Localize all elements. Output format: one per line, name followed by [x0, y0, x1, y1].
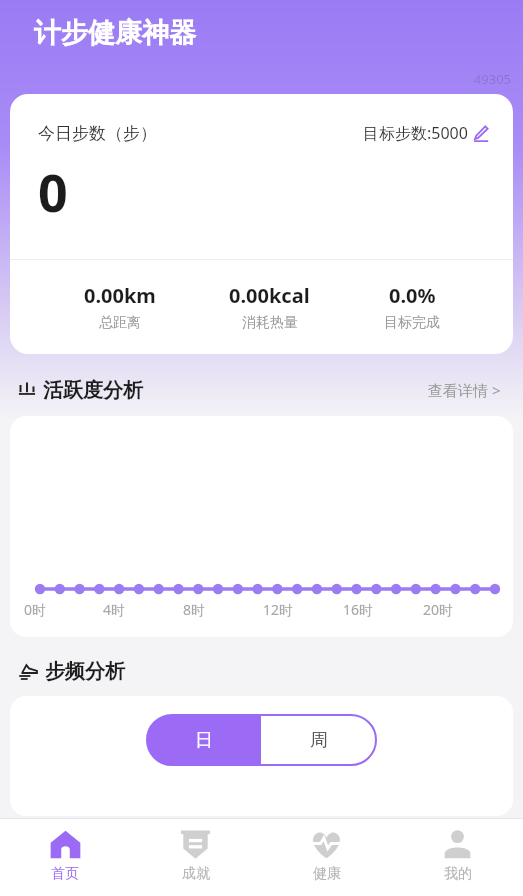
button[interactable]: 查看详情 >: [424, 376, 505, 404]
staticText: 活跃度分析: [43, 378, 143, 403]
staticText: 20时: [423, 600, 454, 619]
button[interactable]: 健康: [261, 819, 392, 896]
button[interactable]: 目标步数:5000: [361, 120, 491, 146]
staticText: 目标完成: [384, 314, 440, 332]
staticText: 0.00kcal: [229, 282, 310, 309]
staticText: 0.0%: [389, 282, 436, 309]
staticText: 日: [195, 729, 213, 752]
staticText: 健康: [313, 865, 341, 883]
other: 健康: [310, 828, 343, 861]
staticText: 成就: [182, 865, 210, 883]
button[interactable]: 成就: [130, 819, 261, 896]
other: 成就: [179, 828, 212, 861]
button[interactable]: 日: [147, 715, 261, 765]
staticText: 周: [310, 729, 328, 752]
staticText: 首页: [51, 865, 79, 883]
other: Edit goal: [472, 125, 489, 142]
staticText: 0: [38, 156, 68, 227]
staticText: 查看详情 >: [428, 380, 501, 400]
staticText: 步频分析: [45, 659, 125, 684]
other: 首页: [49, 828, 82, 861]
staticText: 总距离: [99, 314, 141, 332]
staticText: 0.00km: [84, 282, 156, 309]
staticText: 计步健康神器: [34, 16, 196, 50]
button[interactable]: 周: [261, 715, 376, 765]
staticText: 12时: [263, 600, 294, 619]
other: 我的: [441, 828, 474, 861]
staticText: 消耗热量: [242, 314, 298, 332]
staticText: 今日步数（步）: [38, 123, 157, 144]
staticText: 16时: [343, 600, 374, 619]
button[interactable]: 首页: [0, 819, 130, 896]
staticText: 0时: [24, 600, 47, 619]
staticText: 8时: [183, 600, 206, 619]
staticText: 目标步数:5000: [363, 122, 468, 144]
staticText: 4时: [103, 600, 126, 619]
staticText: 我的: [444, 865, 472, 883]
button[interactable]: 我的: [392, 819, 523, 896]
